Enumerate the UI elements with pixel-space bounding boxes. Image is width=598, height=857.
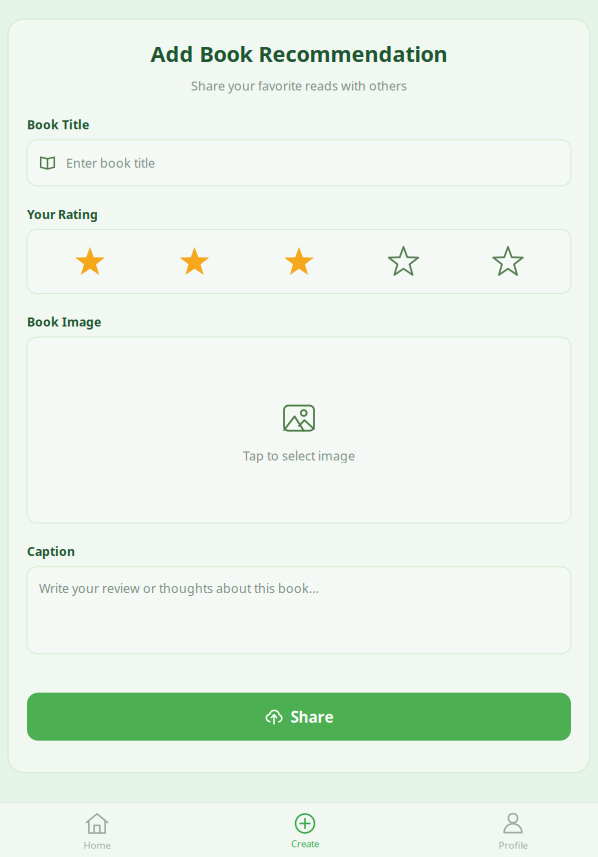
staticText: Tap to select image (243, 447, 355, 464)
staticText: Your Rating (27, 206, 98, 222)
staticText: Share (290, 706, 333, 727)
button[interactable]: Rate 1 star (74, 229, 105, 293)
button[interactable]: Rate 3 star (283, 229, 314, 293)
staticText: Add Book Recommendation (150, 39, 447, 68)
button[interactable]: Rate 2 star (179, 229, 210, 293)
staticText: Book Image (27, 313, 101, 330)
button[interactable]: Home (41, 805, 153, 857)
staticText: Caption (27, 543, 75, 560)
staticText: Write your review or thoughts about this… (39, 580, 319, 597)
button[interactable]: Profile (457, 805, 569, 857)
button[interactable]: Rate 4 star (388, 229, 419, 293)
staticText: Home (83, 838, 110, 852)
staticText: Enter book title (66, 154, 155, 171)
staticText: Share your favorite reads with others (191, 77, 407, 94)
staticText: Profile (498, 838, 527, 852)
staticText: Create (291, 837, 319, 850)
button[interactable]: Enter book title (27, 140, 571, 186)
staticText: Book Title (27, 116, 89, 133)
button[interactable]: Tap to select image (27, 337, 571, 523)
button[interactable]: Rate 5 star (492, 229, 523, 293)
button[interactable]: Create (249, 807, 361, 856)
button[interactable]: Share (27, 693, 571, 741)
button[interactable]: Write your review or thoughts about this… (27, 567, 571, 654)
